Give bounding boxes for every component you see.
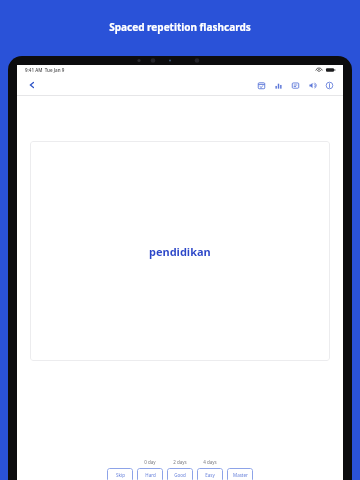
button[interactable]: pendidikan (30, 141, 330, 361)
button[interactable]: Sound (306, 79, 319, 92)
button[interactable]: Skip (107, 468, 133, 480)
staticText: 2 days (173, 459, 187, 465)
staticText: Spaced repetition flashcards (109, 20, 251, 34)
button[interactable]: Info (323, 79, 336, 92)
staticText: Good (174, 472, 186, 478)
staticText: pendidikan (149, 244, 211, 259)
button[interactable]: Easy (197, 468, 223, 480)
button[interactable]: Statistics (272, 79, 285, 92)
button[interactable]: Notes (289, 79, 302, 92)
button[interactable]: Back (24, 77, 40, 93)
staticText: Master (233, 472, 248, 478)
staticText: 0 day (144, 459, 156, 465)
button[interactable]: Schedule (255, 79, 268, 92)
staticText: 4 days (203, 459, 217, 465)
staticText: 9:41 AM Tue Jan 9 (25, 67, 65, 73)
button[interactable]: Good (167, 468, 193, 480)
button[interactable]: Master (227, 468, 253, 480)
staticText: Easy (205, 472, 215, 478)
button[interactable]: Hard (137, 468, 163, 480)
staticText: Skip (116, 472, 125, 478)
staticText: Hard (145, 472, 156, 478)
